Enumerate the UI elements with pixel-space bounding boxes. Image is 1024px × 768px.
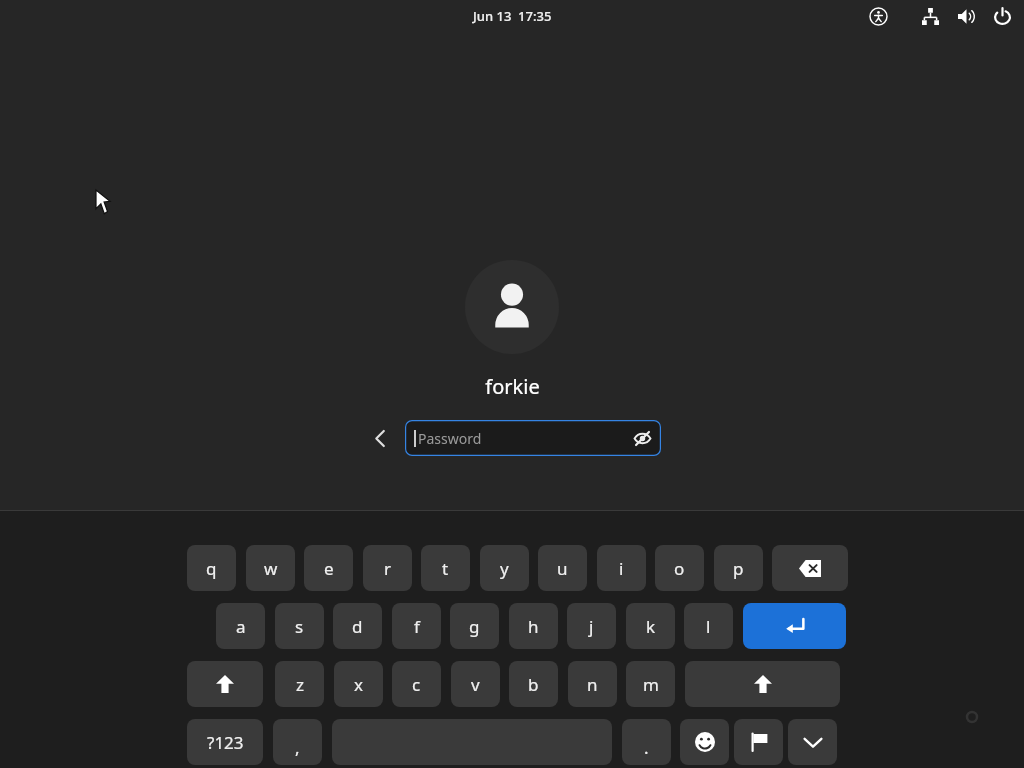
staticText: f (414, 615, 420, 638)
staticText: q (206, 557, 217, 580)
staticText: d (352, 615, 363, 638)
button[interactable]: b (509, 661, 558, 707)
button[interactable] (465, 260, 559, 354)
staticText: j (589, 615, 594, 638)
button[interactable]: o (655, 545, 704, 591)
staticText: c (412, 673, 421, 696)
button[interactable]: t (421, 545, 470, 591)
staticText: v (471, 673, 480, 696)
staticText: u (557, 557, 568, 580)
button[interactable]: e (304, 545, 353, 591)
button[interactable]: , (273, 719, 322, 765)
button[interactable]: Power (990, 4, 1014, 28)
staticText: s (295, 615, 304, 638)
staticText: z (296, 673, 304, 696)
button[interactable]: k (626, 603, 675, 649)
button[interactable]: d (333, 603, 382, 649)
button[interactable]: z (275, 661, 324, 707)
button[interactable]: v (451, 661, 500, 707)
staticText: . (644, 736, 649, 759)
button[interactable]: a (216, 603, 265, 649)
staticText: o (674, 557, 685, 580)
staticText: , (295, 736, 300, 759)
button[interactable]: c (392, 661, 441, 707)
staticText: y (500, 557, 509, 580)
staticText: k (646, 615, 656, 638)
staticText: t (442, 557, 449, 580)
button[interactable]: Password (405, 420, 661, 456)
staticText: w (264, 557, 278, 580)
staticText: i (619, 557, 624, 580)
button[interactable]: Accessibility (866, 4, 890, 28)
staticText: r (384, 557, 392, 580)
button[interactable]: Show password (631, 427, 653, 449)
staticText: ?123 (207, 731, 244, 754)
button[interactable]: Emoji (680, 719, 729, 765)
button[interactable]: Shift (187, 661, 263, 707)
button[interactable]: ?123 (187, 719, 263, 765)
button[interactable]: s (275, 603, 324, 649)
staticText: b (528, 673, 539, 696)
button[interactable]: q (187, 545, 236, 591)
button[interactable]: Network (918, 4, 942, 28)
button[interactable]: p (714, 545, 763, 591)
staticText: e (324, 557, 334, 580)
button[interactable]: g (450, 603, 499, 649)
staticText: m (643, 673, 659, 696)
button[interactable]: Language (734, 719, 783, 765)
button[interactable]: Hide keyboard (788, 719, 837, 765)
staticText: a (236, 615, 246, 638)
button[interactable]: y (480, 545, 529, 591)
button[interactable]: n (568, 661, 617, 707)
button[interactable]: m (626, 661, 675, 707)
button[interactable]: . (622, 719, 671, 765)
button[interactable]: l (684, 603, 733, 649)
staticText: p (733, 557, 744, 580)
button[interactable]: w (246, 545, 295, 591)
button[interactable]: h (509, 603, 558, 649)
staticText: Jun 13 17:35 (473, 7, 552, 25)
staticText: Password (418, 429, 482, 448)
button[interactable]: Back (363, 421, 397, 455)
staticText: h (528, 615, 539, 638)
button[interactable]: i (597, 545, 646, 591)
button[interactable]: x (334, 661, 383, 707)
button[interactable]: Shift (685, 661, 840, 707)
button[interactable]: f (392, 603, 441, 649)
staticText: l (706, 615, 711, 638)
button[interactable]: Enter (743, 603, 846, 649)
button[interactable]: j (567, 603, 616, 649)
staticText: forkie (485, 373, 540, 400)
staticText: g (469, 615, 480, 638)
button[interactable]: r (363, 545, 412, 591)
button[interactable]: u (538, 545, 587, 591)
button[interactable]: Volume (954, 4, 978, 28)
staticText: n (587, 673, 598, 696)
staticText: x (354, 673, 363, 696)
button[interactable]: Backspace (772, 545, 848, 591)
